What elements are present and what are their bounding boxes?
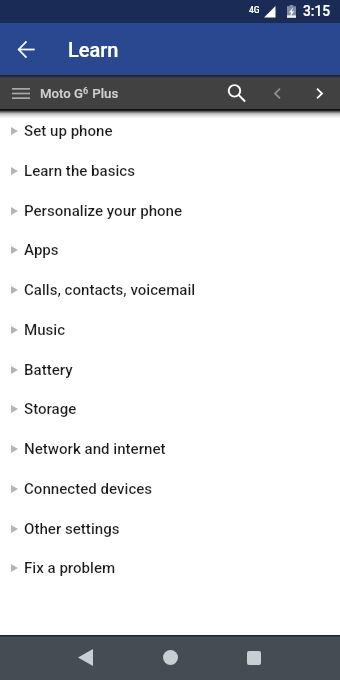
staticText: Music bbox=[24, 321, 66, 339]
staticText: Other settings bbox=[24, 520, 120, 538]
button[interactable]: Learn the basics bbox=[0, 151, 340, 190]
staticText: Network and internet bbox=[24, 440, 166, 458]
staticText: Learn bbox=[68, 38, 119, 61]
button[interactable]: Menu bbox=[3, 76, 38, 110]
button[interactable]: Battery bbox=[0, 350, 340, 389]
staticText: Storage bbox=[24, 400, 77, 418]
staticText: Set up phone bbox=[24, 122, 113, 140]
button[interactable]: Personalize your phone bbox=[0, 191, 340, 230]
button[interactable]: Connected devices bbox=[0, 469, 340, 508]
button[interactable]: Other settings bbox=[0, 509, 340, 548]
button[interactable]: Apps bbox=[0, 230, 340, 269]
staticText: Apps bbox=[24, 241, 59, 259]
button[interactable]: Music bbox=[0, 310, 340, 349]
staticText: 6 bbox=[83, 86, 89, 97]
staticText: 4G bbox=[249, 5, 260, 15]
button[interactable]: Search bbox=[220, 76, 254, 110]
button[interactable]: Storage bbox=[0, 389, 340, 428]
staticText: Plus bbox=[89, 86, 119, 101]
staticText: Battery bbox=[24, 361, 73, 379]
button[interactable]: Back bbox=[10, 33, 42, 65]
button[interactable]: Previous bbox=[262, 78, 292, 108]
button[interactable]: Set up phone bbox=[0, 111, 340, 150]
button[interactable]: Network and internet bbox=[0, 429, 340, 468]
staticText: Personalize your phone bbox=[24, 202, 183, 220]
button[interactable]: Recents bbox=[230, 635, 278, 680]
button[interactable]: Calls, contacts, voicemail bbox=[0, 270, 340, 309]
button[interactable]: Home bbox=[146, 635, 194, 680]
staticText: Connected devices bbox=[24, 480, 153, 498]
staticText: Learn the basics bbox=[24, 162, 135, 180]
button[interactable]: Next bbox=[304, 78, 334, 108]
staticText: Moto G bbox=[40, 86, 83, 101]
button[interactable]: Fix a problem bbox=[0, 548, 340, 587]
staticText: Fix a problem bbox=[24, 559, 116, 577]
staticText: 3:15 bbox=[303, 3, 331, 19]
staticText: Calls, contacts, voicemail bbox=[24, 281, 196, 299]
button[interactable]: Back bbox=[61, 635, 109, 680]
